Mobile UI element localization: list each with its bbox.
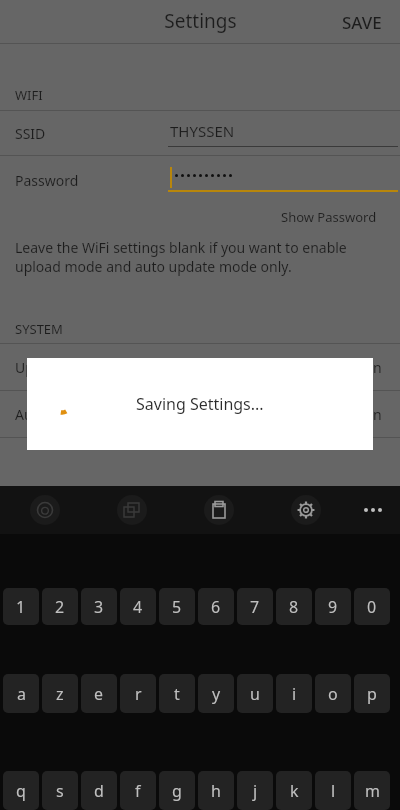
staticText: h [211,780,221,802]
staticText: 0 [367,596,377,618]
button[interactable]: r [120,674,156,713]
staticText: Saving Settings... [136,393,264,415]
button[interactable]: SAVE [324,3,400,42]
button[interactable]: Show Password [275,202,383,232]
staticText: s [56,780,64,802]
staticText: Show Password [281,208,377,226]
button[interactable]: p [354,674,390,713]
button[interactable]: j [237,771,273,810]
button[interactable]: f [120,771,156,810]
button[interactable]: 3 [81,588,117,625]
staticText: 6 [211,596,221,618]
staticText: 9 [328,596,338,618]
button[interactable]: 5 [159,588,195,625]
staticText: THYSSEN [170,121,235,141]
button[interactable]: Emoji [30,495,60,525]
staticText: 5 [172,596,182,618]
button[interactable]: 9 [315,588,351,625]
button[interactable]: m [354,771,390,810]
staticText: 2 [55,596,65,618]
staticText: q [16,780,26,802]
staticText: a [17,683,26,705]
staticText: f [135,780,141,802]
button[interactable]: g [159,771,195,810]
staticText: y [212,683,221,705]
staticText: 8 [289,596,299,618]
button[interactable]: q [3,771,39,810]
button[interactable]: o [315,674,351,713]
staticText: Settings [164,8,237,34]
staticText: k [290,780,299,802]
button[interactable]: Upload mode [0,344,400,390]
button[interactable]: 8 [276,588,312,625]
staticText: 7 [250,596,260,618]
staticText: l [331,780,336,802]
button[interactable]: h [198,771,234,810]
button[interactable]: s [42,771,78,810]
button[interactable]: 4 [120,588,156,625]
button[interactable]: Keyboard settings [291,495,321,525]
staticText: SSID [15,124,46,143]
button[interactable]: k [276,771,312,810]
staticText: r [135,683,142,705]
staticText: On [362,358,382,377]
button[interactable]: z [42,674,78,713]
staticText: m [365,780,380,802]
button[interactable]: 6 [198,588,234,625]
button[interactable]: d [81,771,117,810]
staticText: o [328,683,338,705]
staticText: 1 [16,596,26,618]
button[interactable]: e [81,674,117,713]
button[interactable]: u [237,674,273,713]
button[interactable]: l [315,771,351,810]
button[interactable]: Clipboard [204,495,234,525]
staticText: 3 [94,596,104,618]
button[interactable]: i [276,674,312,713]
button[interactable]: More options [358,495,388,525]
staticText: SAVE [342,11,382,34]
staticText: WIFI [15,86,43,104]
staticText: Leave the WiFi settings blank if you wan… [15,238,347,276]
staticText: SYSTEM [15,320,63,338]
staticText: z [56,683,64,705]
staticText: t [174,683,180,705]
staticText: On [362,405,382,424]
staticText: Password [15,171,79,190]
staticText: j [253,780,258,802]
button[interactable]: a [3,674,39,713]
button[interactable]: 1 [3,588,39,625]
button[interactable]: Auto update mode [0,391,400,437]
staticText: d [94,780,104,802]
staticText: i [292,683,297,705]
button[interactable]: Stickers [117,495,147,525]
button[interactable]: 0 [354,588,390,625]
staticText: Auto update mode [15,405,139,424]
button[interactable]: t [159,674,195,713]
staticText: 4 [133,596,143,618]
staticText: u [250,683,260,705]
button[interactable]: SSID [0,111,400,155]
button[interactable]: 2 [42,588,78,625]
button[interactable]: y [198,674,234,713]
button[interactable]: 7 [237,588,273,625]
staticText: Upload mode [15,358,105,377]
staticText: g [172,780,182,802]
staticText: p [367,683,377,705]
staticText: e [94,683,104,705]
button[interactable]: Password [0,156,400,202]
